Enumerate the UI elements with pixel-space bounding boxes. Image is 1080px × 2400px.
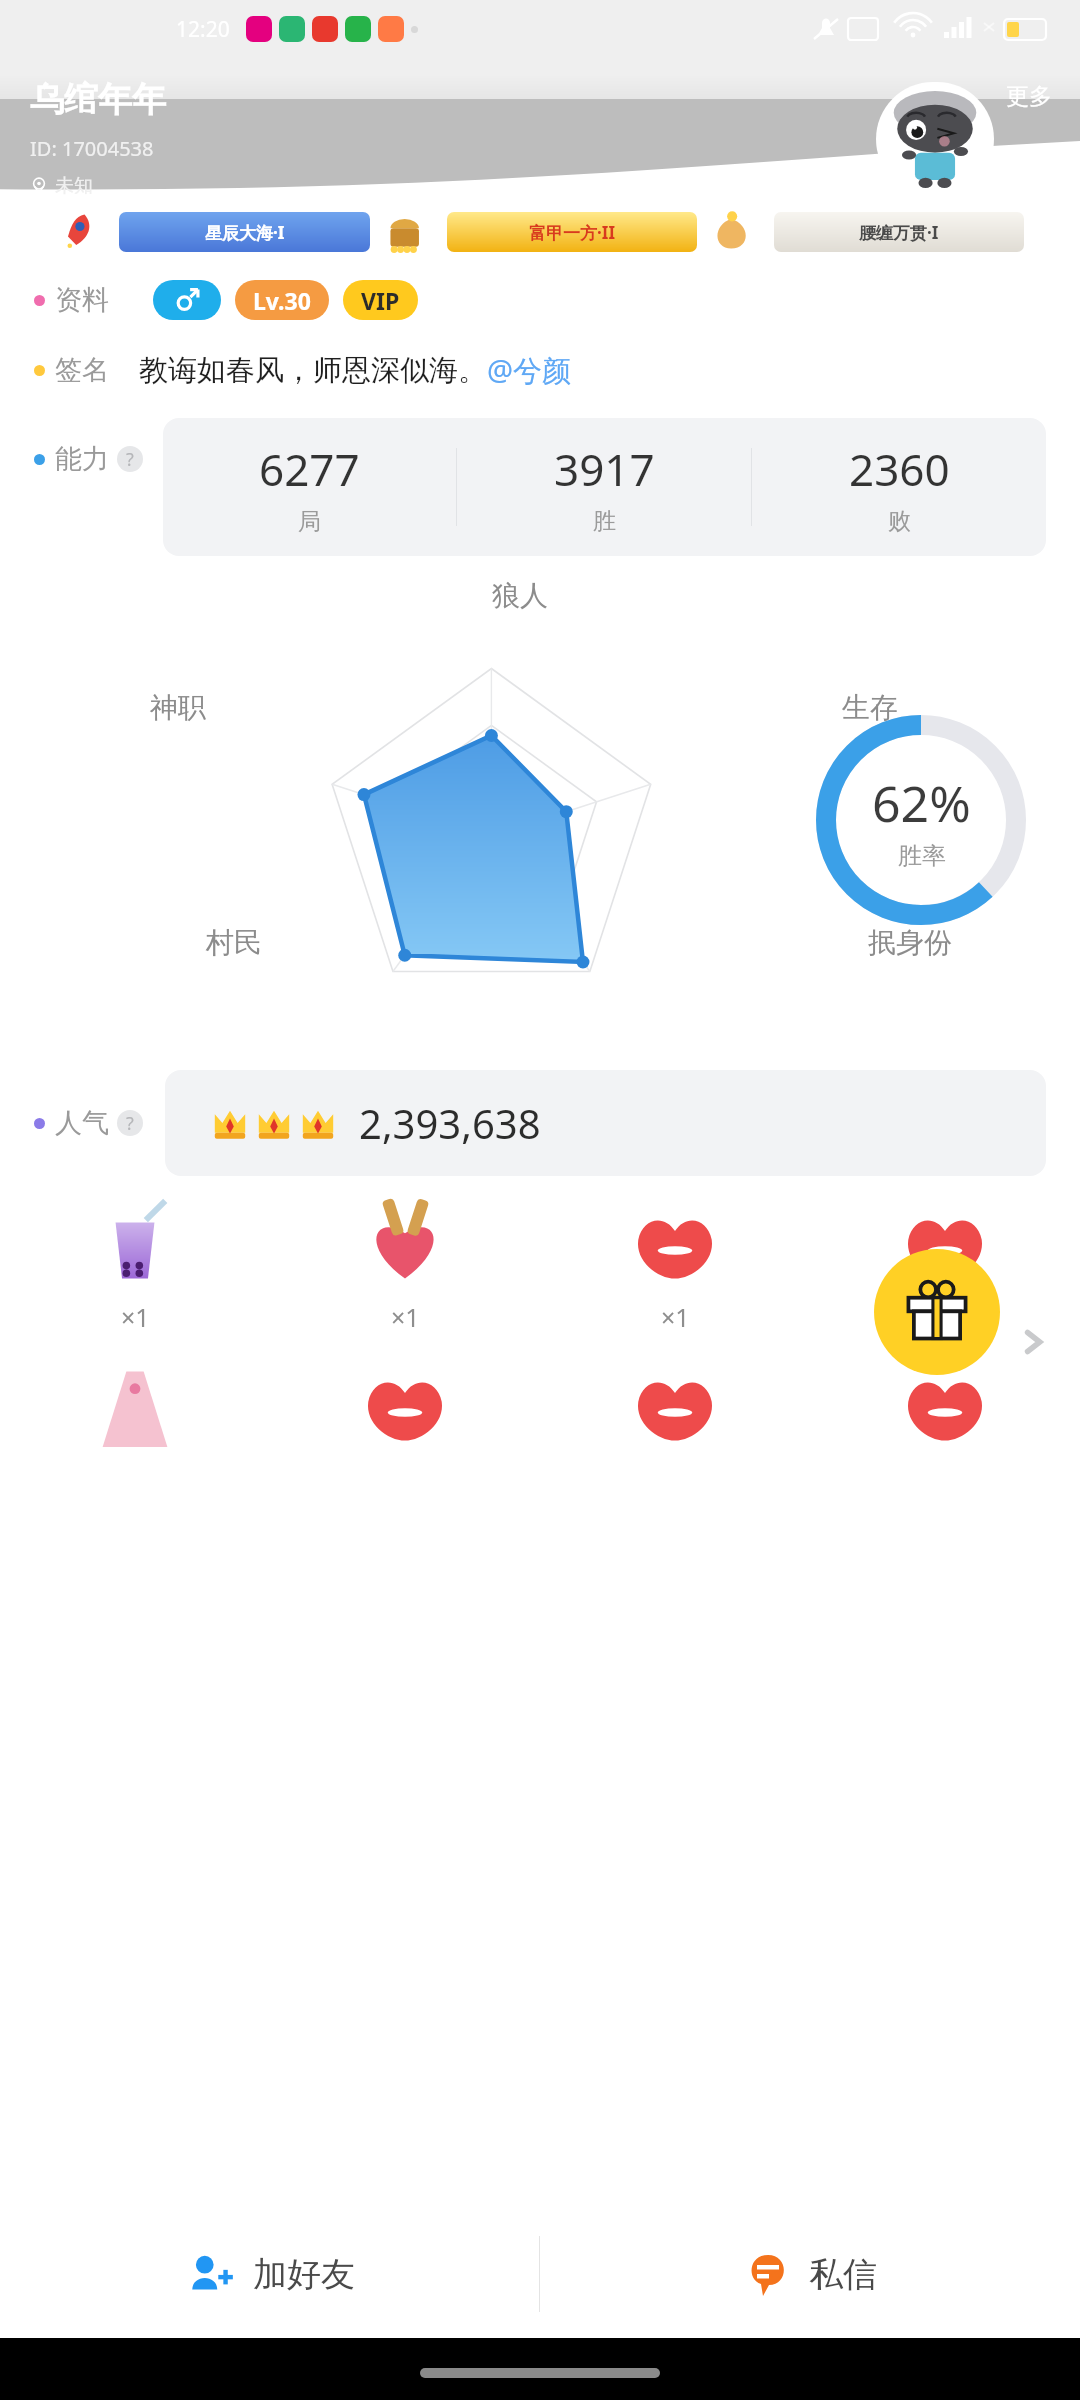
- button[interactable]: VIP: [343, 280, 418, 320]
- staticText: ×1: [121, 1300, 150, 1334]
- staticText: ?: [126, 447, 134, 472]
- staticText: 2,393,638: [359, 1096, 541, 1150]
- staticText: 腰缠万贯·I: [859, 221, 939, 244]
- staticText: 胜率: [898, 841, 946, 871]
- button[interactable]: ×1: [270, 1186, 540, 1338]
- button[interactable]: Send gift: [874, 1249, 1000, 1375]
- button[interactable]: 腰缠万贯·I: [711, 206, 1024, 258]
- button[interactable]: More gifts: [1016, 1325, 1050, 1359]
- staticText: 富甲一方·II: [529, 221, 616, 244]
- staticText: 乌绾年年: [30, 78, 166, 121]
- staticText: ?: [126, 1111, 134, 1136]
- button[interactable]: Gender male: [153, 280, 221, 320]
- button[interactable]: 富甲一方·II: [384, 206, 697, 258]
- button[interactable]: 更多: [1000, 76, 1058, 117]
- staticText: VIP: [361, 285, 400, 316]
- button[interactable]: Help: [117, 446, 143, 472]
- button[interactable]: [540, 1348, 810, 1464]
- button[interactable]: Help: [117, 1110, 143, 1136]
- button[interactable]: 星辰大海·I: [56, 206, 370, 258]
- button[interactable]: [810, 1186, 1080, 1302]
- staticText: 2360: [849, 439, 950, 499]
- button[interactable]: ×1: [0, 1186, 270, 1338]
- button[interactable]: @兮颜: [487, 350, 572, 390]
- staticText: 星辰大海·I: [205, 221, 285, 244]
- staticText: 胜: [593, 507, 616, 536]
- staticText: ×1: [661, 1300, 690, 1334]
- staticText: 更多: [1006, 82, 1052, 111]
- button[interactable]: Avatar: [876, 82, 994, 196]
- staticText: 教诲如春风，师恩深似海。: [139, 352, 487, 389]
- staticText: 3917: [554, 439, 655, 499]
- staticText: 能力: [55, 442, 109, 476]
- button[interactable]: ×1: [540, 1186, 810, 1338]
- button[interactable]: 私信: [540, 2210, 1080, 2338]
- button[interactable]: [0, 1348, 270, 1464]
- staticText: 6277: [259, 439, 360, 499]
- staticText: 62%: [872, 769, 971, 837]
- staticText: 签名: [55, 353, 109, 387]
- button[interactable]: [810, 1348, 1080, 1464]
- staticText: 村民: [206, 925, 262, 960]
- staticText: 加好友: [253, 2253, 355, 2296]
- button[interactable]: [270, 1348, 540, 1464]
- staticText: 败: [888, 507, 911, 536]
- button[interactable]: 2,393,638: [165, 1070, 1046, 1176]
- staticText: 私信: [809, 2253, 877, 2296]
- staticText: 抿身份: [868, 925, 952, 960]
- staticText: 人气: [55, 1106, 109, 1140]
- staticText: 资料: [55, 283, 109, 317]
- staticText: 神职: [150, 690, 206, 725]
- staticText: 未知: [55, 174, 93, 196]
- staticText: 生存: [842, 690, 898, 725]
- button[interactable]: 加好友: [0, 2210, 539, 2338]
- staticText: 狼人: [492, 578, 548, 613]
- staticText: Lv.30: [253, 285, 311, 316]
- staticText: 12:20: [176, 15, 230, 44]
- button[interactable]: Lv.30: [235, 280, 329, 320]
- staticText: ×1: [391, 1300, 420, 1334]
- button[interactable]: 62%: [816, 715, 1026, 925]
- staticText: ID: 17004538: [30, 135, 154, 162]
- staticText: 局: [298, 507, 321, 536]
